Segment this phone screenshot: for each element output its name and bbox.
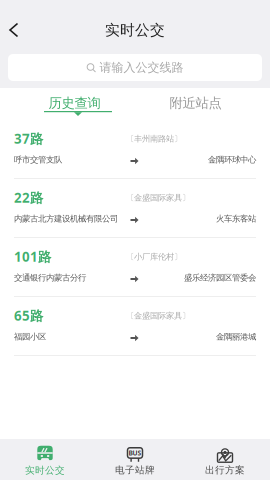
button[interactable]: 65路 (0, 297, 270, 355)
staticText: 历史查询 (48, 95, 100, 111)
staticText: 电子站牌 (115, 464, 155, 476)
staticText: 盛乐经济园区管委会 (184, 272, 256, 283)
staticText: 交通银行内蒙古分行 (14, 272, 86, 283)
button[interactable]: 附近站点 (135, 94, 256, 112)
staticText: 37路 (14, 129, 43, 148)
staticText: 实时公交 (25, 464, 65, 476)
button[interactable]: 出行方案 (180, 439, 270, 480)
button[interactable]: 实时公交 (0, 439, 90, 480)
button[interactable]: 请输入公交线路 (8, 54, 262, 81)
staticText: 〔丰州南路站〕 (126, 133, 182, 144)
button[interactable]: 22路 (0, 179, 270, 237)
button[interactable]: Back (2, 18, 26, 42)
staticText: 实时公交 (105, 21, 165, 39)
staticText: 〔小厂库伦村〕 (126, 251, 182, 262)
button[interactable]: 历史查询 (14, 94, 135, 112)
staticText: BUS (128, 448, 141, 457)
staticText: 金隅丽港城 (216, 331, 256, 342)
staticText: 22路 (14, 188, 43, 207)
staticText: 火车东客站 (216, 213, 256, 224)
staticText: 〔金盛国际家具〕 (126, 310, 190, 321)
button[interactable]: 101路 (0, 238, 270, 296)
staticText: 福园小区 (14, 331, 46, 342)
staticText: 请输入公交线路 (99, 60, 183, 75)
button[interactable]: 37路 (0, 120, 270, 178)
staticText: 内蒙古北方建设机械有限公司 (14, 213, 118, 224)
staticText: 〔金盛国际家具〕 (126, 192, 190, 203)
staticText: 附近站点 (169, 95, 221, 111)
staticText: 65路 (14, 306, 43, 325)
button[interactable]: BUS (90, 439, 180, 480)
staticText: 金隅环球中心 (208, 154, 256, 165)
staticText: 出行方案 (205, 464, 245, 476)
staticText: 101路 (14, 247, 51, 266)
staticText: 呼市交管支队 (14, 154, 62, 165)
